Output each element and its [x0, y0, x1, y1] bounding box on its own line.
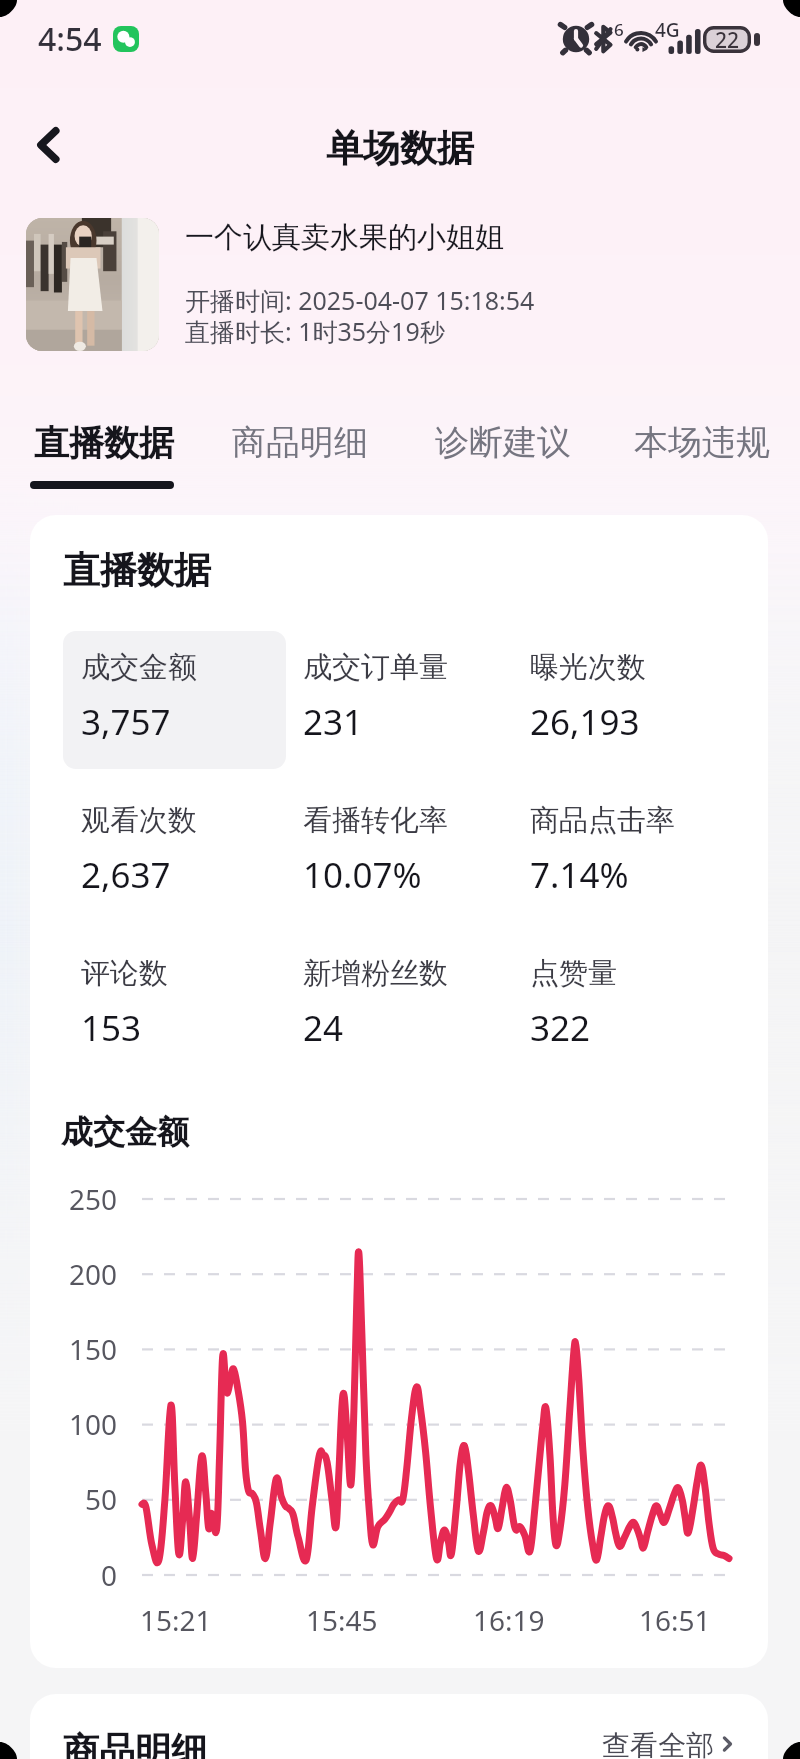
staticText: 商品点击率 [530, 802, 675, 839]
staticText: 曝光次数 [530, 649, 646, 686]
button[interactable]: 成交订单量 [285, 631, 516, 769]
staticText: 商品明细 [63, 1728, 207, 1759]
staticText: 本场违规 [634, 421, 770, 464]
button[interactable]: 新增粉丝数 [285, 932, 516, 1070]
button[interactable]: 诊断建议 [433, 421, 573, 488]
staticText: 直播时长: 1时35分19秒 [185, 314, 445, 348]
staticText: 0 [101, 1556, 118, 1594]
button[interactable]: 商品明细 [230, 421, 370, 488]
button[interactable]: 商品点击率 [512, 779, 742, 917]
staticText: 26,193 [530, 698, 640, 746]
staticText: 231 [303, 698, 364, 746]
staticText: 250 [69, 1180, 118, 1218]
staticText: 7.14% [530, 851, 629, 899]
staticText: 4G [655, 17, 680, 43]
staticText: 6 [614, 18, 624, 41]
staticText: 查看全部 [602, 1728, 714, 1759]
staticText: 10.07% [303, 851, 422, 899]
staticText: 322 [530, 1004, 591, 1052]
button[interactable]: 直播数据 [28, 421, 180, 489]
staticText: 3,757 [81, 698, 171, 746]
staticText: 22 [715, 26, 740, 53]
staticText: 200 [69, 1255, 118, 1293]
staticText: 直播数据 [34, 421, 174, 465]
staticText: 4:54 [38, 17, 102, 61]
staticText: 评论数 [81, 955, 168, 992]
staticText: 看播转化率 [303, 802, 448, 839]
staticText: 成交订单量 [303, 649, 448, 686]
button[interactable]: 点赞量 [512, 932, 742, 1070]
staticText: 15:45 [306, 1601, 378, 1639]
staticText: 直播数据 [63, 547, 211, 594]
button[interactable]: 观看次数 [63, 779, 286, 917]
staticText: 150 [69, 1330, 118, 1368]
staticText: 成交金额 [61, 1112, 189, 1152]
staticText: 24 [303, 1004, 344, 1052]
button[interactable]: 查看全部 [602, 1728, 738, 1759]
staticText: 诊断建议 [435, 421, 571, 464]
staticText: 一个认真卖水果的小姐姐 [185, 219, 504, 256]
staticText: 成交金额 [81, 649, 197, 686]
staticText: 153 [81, 1004, 142, 1052]
button[interactable]: 本场违规 [632, 421, 772, 488]
button[interactable]: 评论数 [63, 932, 286, 1070]
staticText: 2,637 [81, 851, 171, 899]
staticText: 单场数据 [326, 125, 474, 172]
staticText: 观看次数 [81, 802, 197, 839]
button[interactable]: 成交金额 [63, 631, 286, 769]
staticText: 100 [69, 1405, 118, 1443]
staticText: 商品明细 [232, 421, 368, 464]
staticText: 16:51 [639, 1601, 711, 1639]
staticText: 点赞量 [530, 955, 617, 992]
button[interactable]: Back [18, 114, 80, 176]
button[interactable]: 曝光次数 [512, 631, 742, 769]
staticText: 15:21 [140, 1601, 212, 1639]
button[interactable]: 看播转化率 [285, 779, 516, 917]
staticText: 16:19 [473, 1601, 545, 1639]
staticText: 50 [85, 1480, 118, 1518]
staticText: 新增粉丝数 [303, 955, 448, 992]
staticText: 开播时间: 2025-04-07 15:18:54 [185, 283, 535, 317]
